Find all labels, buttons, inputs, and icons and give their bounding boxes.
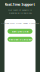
staticText: Average wait time: under 2 minutes <box>1 21 39 25</box>
staticText: Our team of experts is <box>8 8 32 11</box>
staticText: Start Live Chat <box>11 30 28 33</box>
staticText: Request a Callback <box>8 38 31 41</box>
staticText: Real-Time Support <box>4 2 35 7</box>
button[interactable]: Start Live Chat <box>7 29 32 34</box>
button[interactable]: Request a Callback <box>7 37 32 42</box>
staticText: standing by to help you <box>8 11 31 14</box>
